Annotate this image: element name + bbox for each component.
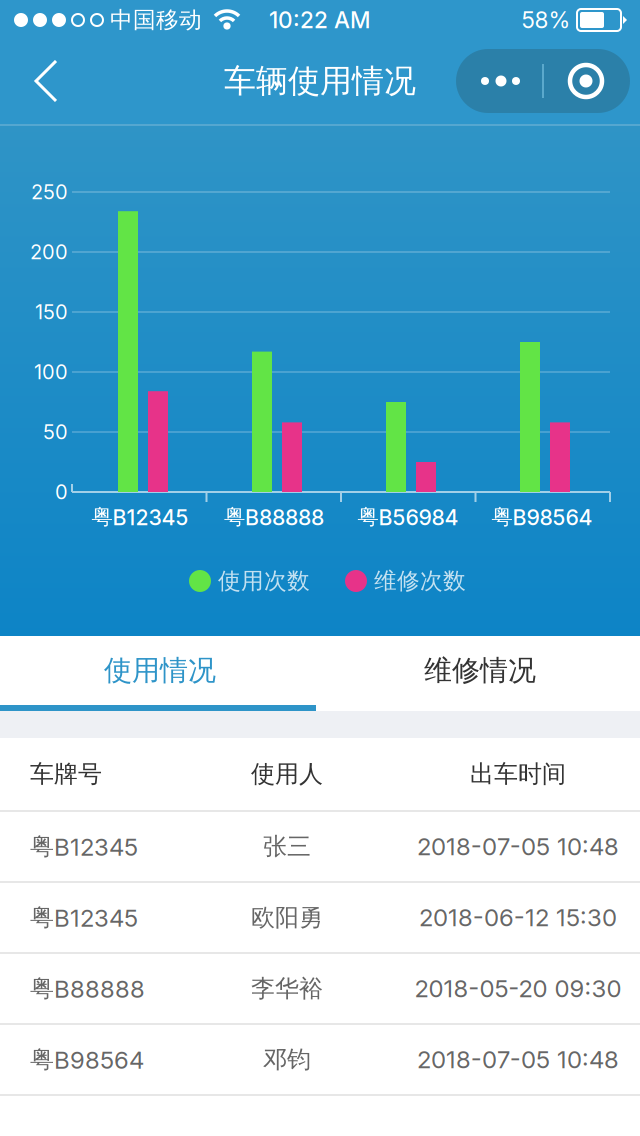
staticText: 维修次数 xyxy=(374,567,466,595)
staticText: 张三 xyxy=(263,832,311,861)
staticText: 中国移动 xyxy=(110,6,202,34)
button[interactable]: Close xyxy=(566,61,606,101)
staticText: 粤B56984 xyxy=(357,504,458,530)
staticText: 使用人 xyxy=(251,759,323,789)
button[interactable]: More xyxy=(477,61,525,101)
staticText: 0 xyxy=(55,480,68,504)
staticText: 50 xyxy=(43,420,68,444)
staticText: 250 xyxy=(31,180,68,204)
staticText: 粤B12345 xyxy=(30,832,138,861)
staticText: 2018-07-05 10:48 xyxy=(417,1045,619,1074)
staticText: 粤B98564 xyxy=(30,1045,144,1074)
staticText: 100 xyxy=(34,360,68,384)
staticText: 10:22 AM xyxy=(269,7,371,33)
staticText: 车辆使用情况 xyxy=(224,61,416,101)
staticText: 2018-05-20 09:30 xyxy=(414,974,621,1003)
staticText: 出车时间 xyxy=(470,759,566,789)
staticText: 维修情况 xyxy=(424,653,536,688)
staticText: 邓钧 xyxy=(263,1045,311,1074)
staticText: 粤B12345 xyxy=(30,903,138,932)
staticText: 粤B88888 xyxy=(30,974,145,1003)
staticText: 58% xyxy=(521,7,570,33)
staticText: 200 xyxy=(30,240,68,264)
staticText: 粤B88888 xyxy=(224,504,324,530)
button[interactable]: 使用情况 xyxy=(0,636,320,705)
staticText: 使用次数 xyxy=(218,567,310,595)
staticText: 粤B12345 xyxy=(91,504,188,530)
button[interactable]: Back xyxy=(22,53,70,109)
staticText: 李华裕 xyxy=(251,974,323,1003)
staticText: 使用情况 xyxy=(104,653,216,688)
staticText: 欧阳勇 xyxy=(251,903,323,932)
staticText: 车牌号 xyxy=(30,759,102,789)
staticText: 粤B98564 xyxy=(491,504,592,530)
button[interactable]: 维修情况 xyxy=(320,636,640,705)
staticText: 150 xyxy=(35,300,68,324)
staticText: 2018-07-05 10:48 xyxy=(417,832,619,861)
staticText: 2018-06-12 15:30 xyxy=(419,903,617,932)
